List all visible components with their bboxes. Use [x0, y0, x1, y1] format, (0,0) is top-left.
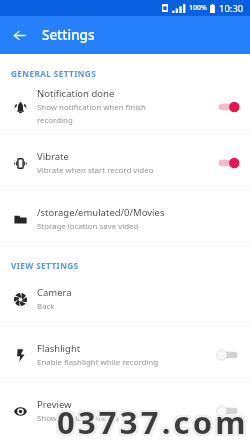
staticText: 03737.com: [55, 399, 247, 441]
staticText: 03737.com: [55, 402, 247, 444]
staticText: 03737.com: [55, 403, 247, 445]
staticText: Settings: [42, 26, 95, 44]
staticText: Enable flashlight while recording: [37, 357, 159, 368]
button[interactable]: Switch on: [213, 153, 243, 173]
staticText: Show notification when finish recording: [37, 102, 146, 126]
button[interactable]: /storage/emulated/0/Movies: [0, 191, 250, 246]
staticText: 03737.com: [59, 400, 250, 442]
staticText: 03737.com: [58, 401, 250, 443]
button[interactable]: Switch on: [213, 97, 243, 117]
staticText: 03737.com: [59, 401, 250, 443]
staticText: 100%: [189, 3, 207, 13]
button[interactable]: Switch off: [213, 401, 243, 421]
staticText: 03737.com: [58, 399, 250, 441]
staticText: Notification done: [37, 87, 115, 100]
staticText: 03737.com: [56, 400, 248, 442]
staticText: 03737.com: [58, 402, 250, 444]
staticText: 03737.com: [57, 399, 249, 441]
staticText: 03737.com: [55, 401, 247, 443]
staticText: Flashlight: [37, 342, 81, 355]
staticText: Vibrate: [37, 150, 69, 163]
button[interactable]: Preview: [0, 383, 250, 438]
staticText: 03737.com: [58, 400, 250, 442]
button[interactable]: Flashlight: [0, 327, 250, 382]
staticText: 03737.com: [57, 400, 249, 442]
staticText: 03737.com: [56, 402, 248, 444]
staticText: 03737.com: [56, 401, 248, 443]
staticText: 03737.com: [56, 403, 248, 445]
staticText: Camera: [37, 286, 72, 299]
staticText: GENERAL SETTINGS: [11, 68, 97, 79]
staticText: 03737.com: [57, 403, 249, 445]
staticText: 03737.com: [55, 400, 247, 442]
staticText: VIEW SETTINGS: [11, 260, 79, 271]
staticText: 03737.com: [58, 403, 250, 445]
staticText: Back: [37, 301, 55, 312]
button[interactable]: Back: [6, 22, 32, 48]
button[interactable]: Switch off: [213, 345, 243, 365]
button[interactable]: Notification done: [0, 79, 250, 134]
staticText: 03737.com: [56, 399, 248, 441]
button[interactable]: Vibrate: [0, 135, 250, 190]
staticText: 03737.com: [57, 402, 249, 444]
staticText: 03737.com: [59, 402, 250, 444]
staticText: 03737.com: [59, 403, 250, 445]
staticText: 03737.com: [59, 399, 250, 441]
button[interactable]: Camera: [0, 271, 250, 326]
staticText: Storage location save video: [37, 221, 139, 232]
staticText: /storage/emulated/0/Movies: [37, 206, 165, 219]
staticText: Preview: [37, 398, 72, 411]
staticText: Show preview window: [37, 413, 119, 424]
staticText: Vibrate when start record video: [37, 165, 154, 176]
staticText: 10:30: [219, 2, 244, 15]
staticText: 03737.com: [57, 401, 249, 443]
